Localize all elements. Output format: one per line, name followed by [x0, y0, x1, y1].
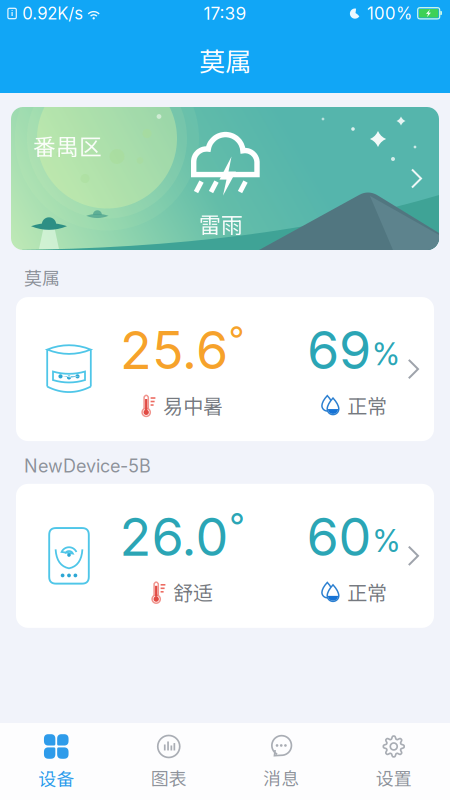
button[interactable]: 设置 — [337, 722, 450, 800]
staticText: 莫属 — [199, 41, 251, 79]
staticText: % — [372, 335, 400, 373]
button[interactable]: 消息 — [225, 722, 337, 800]
staticText: 17:39 — [204, 3, 247, 24]
button[interactable]: 26.0 — [16, 484, 434, 628]
staticText: 设备 — [38, 765, 74, 791]
staticText: 莫属 — [24, 264, 60, 290]
staticText: 0.92K/s — [17, 3, 83, 24]
staticText: 舒适 — [173, 577, 213, 606]
staticText: 雷雨 — [199, 208, 243, 239]
button[interactable]: 番禺区 — [11, 107, 439, 250]
staticText: 60 — [306, 505, 371, 568]
staticText: 69 — [307, 319, 371, 381]
staticText: 设置 — [376, 764, 412, 791]
staticText: 易中暑 — [163, 390, 223, 419]
button[interactable]: 图表 — [112, 722, 225, 800]
staticText: NewDevice-5B — [24, 455, 151, 477]
staticText: 100% — [362, 3, 417, 24]
staticText: 正常 — [347, 390, 387, 419]
button[interactable]: 25.6 — [16, 297, 434, 441]
button[interactable]: 设备 — [0, 722, 112, 800]
staticText: 番禺区 — [33, 129, 102, 162]
staticText: 25.6 — [120, 319, 228, 381]
staticText: 图表 — [151, 764, 187, 791]
staticText: 正常 — [347, 577, 387, 606]
staticText: 消息 — [263, 764, 299, 791]
staticText: ° — [229, 318, 244, 360]
staticText: 26.0 — [119, 505, 228, 568]
staticText: ° — [229, 505, 244, 547]
staticText: % — [372, 522, 400, 559]
